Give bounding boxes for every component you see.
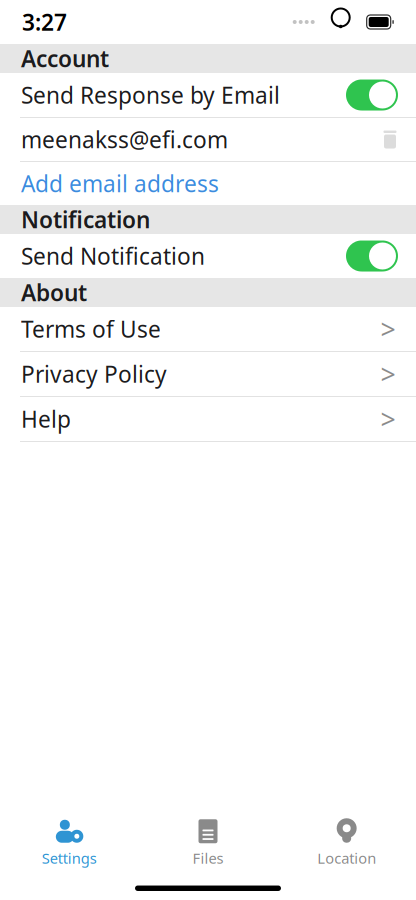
button[interactable]: Location (277, 814, 416, 872)
button[interactable]: Send Notification (0, 234, 416, 278)
staticText: 3:27 (22, 7, 67, 37)
button[interactable]: Privacy Policy (0, 352, 416, 396)
staticText: meenakss@efi.com (21, 124, 228, 154)
staticText: About (21, 277, 87, 307)
staticText: Account (21, 43, 109, 73)
staticText: Add email address (21, 168, 219, 198)
staticText: > (380, 401, 395, 437)
staticText: > (380, 311, 395, 347)
button[interactable]: Help (0, 397, 416, 441)
staticText: Settings (42, 848, 97, 868)
button[interactable]: Add email address (0, 162, 416, 205)
staticText: Files (192, 848, 223, 868)
staticText: Privacy Policy (21, 359, 167, 389)
staticText: > (380, 356, 395, 392)
staticText: Location (317, 848, 376, 868)
staticText: Terms of Use (21, 314, 161, 344)
button[interactable]: Files (139, 814, 277, 872)
button[interactable]: Terms of Use (0, 307, 416, 351)
button[interactable]: Send Response by Email (0, 73, 416, 117)
button[interactable]: Settings (0, 814, 139, 872)
button[interactable]: Delete email address (372, 121, 408, 157)
staticText: Send Notification (21, 241, 205, 271)
staticText: Help (21, 404, 71, 434)
staticText: Notification (21, 204, 150, 234)
staticText: Send Response by Email (21, 80, 280, 110)
